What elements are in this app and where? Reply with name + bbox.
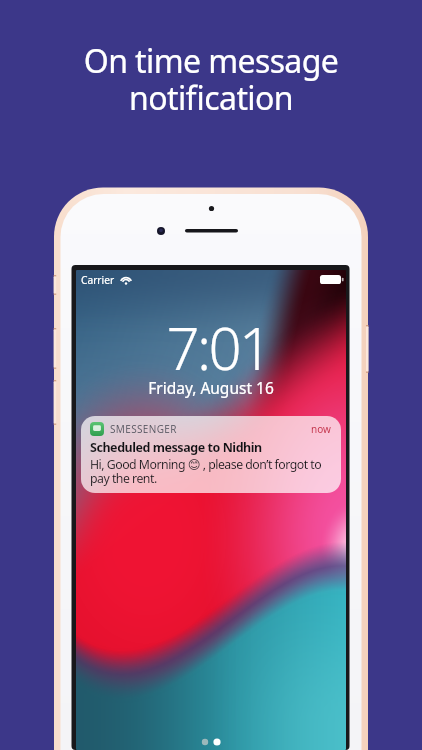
button[interactable]: SMESSENGER: [81, 416, 341, 493]
staticText: On time message notification: [14, 39, 408, 120]
staticText: 7:01: [83, 308, 346, 387]
staticText: Carrier: [81, 273, 115, 287]
staticText: Friday, August 16: [76, 377, 346, 398]
staticText: Scheduled message to Nidhin: [90, 439, 262, 456]
staticText: now: [311, 422, 331, 436]
staticText: Hi, Good Morning 😊 , please don’t forgot…: [90, 456, 331, 487]
staticText: SMESSENGER: [110, 422, 177, 436]
